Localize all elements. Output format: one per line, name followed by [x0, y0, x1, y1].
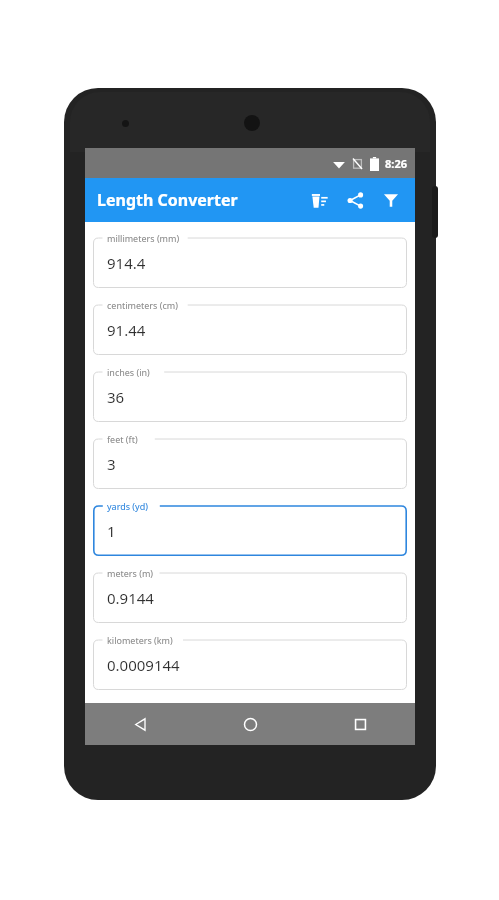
button[interactable]: inches (in) [93, 365, 407, 422]
staticText: 36 [107, 387, 125, 407]
staticText: 0.9144 [107, 588, 154, 608]
staticText: inches (in) [107, 366, 150, 378]
button[interactable]: millimeters (mm) [93, 231, 407, 288]
staticText: 3 [107, 454, 116, 474]
button[interactable]: centimeters (cm) [93, 298, 407, 355]
staticText: feet (ft) [107, 433, 138, 445]
button[interactable]: Share [337, 182, 373, 218]
staticText: 1 [107, 521, 116, 541]
staticText: centimeters (cm) [107, 299, 178, 311]
staticText: 91.44 [107, 320, 146, 340]
staticText: Length Converter [97, 189, 238, 211]
staticText: 0.0009144 [107, 655, 180, 675]
button[interactable]: feet (ft) [93, 432, 407, 489]
staticText: millimeters (mm) [107, 232, 180, 244]
button[interactable]: Home [195, 703, 305, 745]
staticText: yards (yd) [107, 500, 148, 512]
staticText: 914.4 [107, 253, 146, 273]
button[interactable]: Back [85, 703, 195, 745]
button[interactable]: Recents [305, 703, 415, 745]
button[interactable]: kilometers (km) [93, 633, 407, 690]
button[interactable]: Filter [373, 182, 409, 218]
staticText: 8:26 [385, 156, 407, 171]
staticText: kilometers (km) [107, 634, 173, 646]
staticText: meters (m) [107, 567, 153, 579]
button[interactable]: meters (m) [93, 566, 407, 623]
button[interactable]: yards (yd) [93, 499, 407, 556]
button[interactable]: Clear all [301, 182, 337, 218]
